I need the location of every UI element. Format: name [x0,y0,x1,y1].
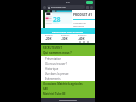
staticText: SAV [43,87,48,91]
button[interactable]: Où nous trouver? [41,61,95,66]
button[interactable]: RECRUTEMENT [41,45,95,50]
button[interactable]: elhorsagile.com [47,5,85,9]
button[interactable]: Site info [43,6,46,9]
button[interactable]: Qui sommes nous ? [41,50,95,56]
staticText: Qui sommes nous ? [43,51,72,55]
staticText: 9:41 [66,1,71,4]
button[interactable]: Historique [41,66,95,71]
staticText: Avantage de fabrication [73,22,95,28]
button[interactable]: Présentation [41,56,95,61]
staticText: -40€ [78,37,95,41]
staticText: 28 [53,15,61,24]
staticText: Vue dans la presse [45,72,69,76]
staticText: Présentation [45,57,62,61]
button[interactable]: Matériel Tube BE [41,91,95,96]
staticText: Où nous trouver? [45,62,67,66]
staticText: gamme 2 [61,34,78,37]
staticText: DECOUVREZ NOS GAMMES [52,30,84,33]
staticText: -30€ [61,37,78,41]
button[interactable]: Occasions Matériels agricoles [41,81,95,86]
staticText: Matériel Tube BE [43,92,66,96]
staticText: PRODUIT #1 [73,13,93,17]
staticText: gamme 3 [78,34,95,37]
staticText: Occasions Matériels agricoles [43,82,83,86]
button[interactable]: SAV [41,86,95,91]
staticText: -20€ [45,37,61,41]
button[interactable]: Evénements [41,76,95,81]
button[interactable]: DECOUVREZ NOS GAMMES [41,28,95,34]
button[interactable]: More options [90,6,93,9]
staticText: RECRUTEMENT [43,46,62,50]
staticText: Evénements [45,77,61,81]
staticText: elhorsagile.com [51,6,66,9]
staticText: Historique [45,67,59,71]
staticText: gamme 1 [45,34,61,37]
button[interactable]: Vue dans la presse [41,71,95,76]
